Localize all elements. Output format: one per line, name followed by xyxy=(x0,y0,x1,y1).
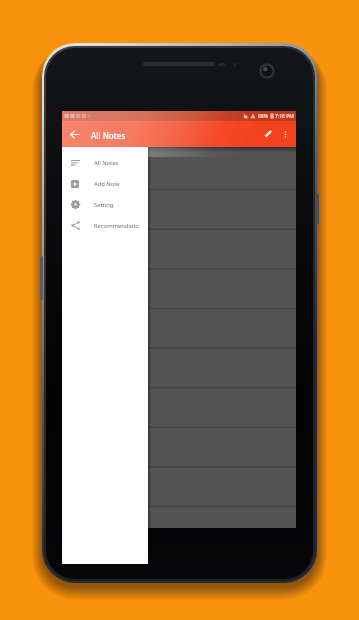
button[interactable]: Back xyxy=(62,121,86,147)
staticText: Add Note xyxy=(94,180,120,188)
button[interactable]: All Notes xyxy=(62,152,148,173)
button[interactable]: Recommendatio xyxy=(62,215,148,236)
button[interactable]: More options xyxy=(276,121,295,147)
button[interactable]: Edit xyxy=(260,121,276,147)
staticText: 68% xyxy=(258,113,268,120)
staticText: 7:16 PM xyxy=(275,113,294,120)
button[interactable]: Add Note xyxy=(62,173,148,194)
staticText: Recommendatio xyxy=(94,222,139,230)
button[interactable]: Setting xyxy=(62,194,148,215)
staticText: All Notes xyxy=(91,130,126,141)
staticText: All Notes xyxy=(94,159,119,167)
staticText: Setting xyxy=(94,201,114,209)
